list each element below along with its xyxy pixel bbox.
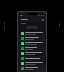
button[interactable]: Item icon: [19, 66, 45, 71]
other: Item icon: [21, 42, 24, 45]
button[interactable]: Item icon: [19, 51, 45, 56]
button[interactable]: Item icon: [19, 41, 45, 46]
button[interactable]: Item icon: [19, 31, 45, 36]
other: Item icon: [21, 52, 24, 55]
button[interactable]: Item icon: [19, 61, 45, 66]
other: Item icon: [21, 62, 24, 65]
other: Item icon: [21, 57, 24, 60]
other: Item icon: [21, 67, 24, 70]
button[interactable]: Item icon: [19, 56, 45, 61]
other: Item icon: [21, 32, 24, 35]
button[interactable]: Item icon: [19, 46, 45, 51]
button[interactable]: Item icon: [19, 36, 45, 41]
button[interactable]: More options: [42, 19, 44, 21]
other: Item icon: [21, 37, 24, 40]
other: Item icon: [21, 47, 24, 50]
